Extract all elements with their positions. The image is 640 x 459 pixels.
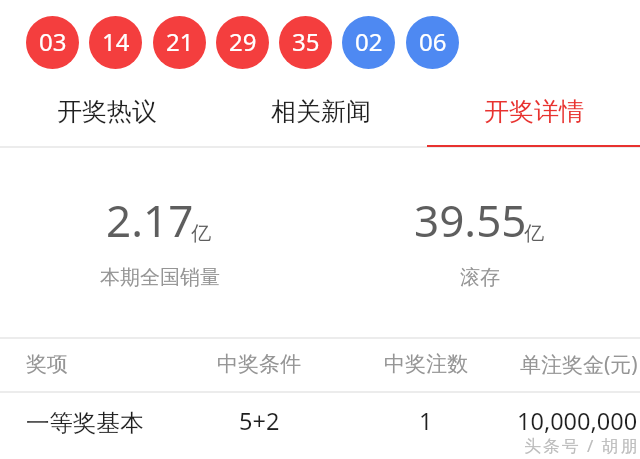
staticText: 14	[102, 25, 130, 58]
staticText: 中奖条件	[217, 351, 301, 377]
staticText: 03	[39, 25, 67, 58]
staticText: 一等奖基本	[26, 408, 144, 438]
staticText: 相关新闻	[271, 96, 371, 127]
staticText: 本期全国销量	[100, 265, 220, 290]
staticText: 29	[229, 25, 257, 58]
staticText: 亿	[191, 221, 211, 246]
staticText: 06	[419, 25, 447, 58]
staticText: 滚存	[460, 265, 500, 290]
staticText: 开奖热议	[57, 96, 157, 127]
button[interactable]: 一等奖基本	[0, 396, 640, 449]
staticText: 02	[355, 25, 383, 58]
staticText: 35	[292, 25, 320, 58]
staticText: 单注奖金(元)	[520, 350, 638, 379]
staticText: 2.17	[106, 190, 194, 250]
button[interactable]: 02	[342, 16, 395, 69]
staticText: 开奖详情	[484, 96, 584, 127]
staticText: 中奖注数	[384, 351, 468, 377]
staticText: 奖项	[26, 351, 68, 377]
staticText: 1	[419, 405, 433, 437]
button[interactable]: 21	[153, 16, 206, 69]
button[interactable]: 06	[406, 16, 459, 69]
staticText: 21	[166, 25, 194, 58]
button[interactable]: 14	[89, 16, 142, 69]
button[interactable]: 开奖详情	[427, 87, 640, 135]
staticText: 5+2	[239, 405, 280, 437]
staticText: 10,000,000	[517, 405, 638, 437]
staticText: 头条号 / 胡朋	[524, 434, 640, 457]
button[interactable]: 相关新闻	[214, 87, 427, 135]
button[interactable]: 29	[216, 16, 269, 69]
button[interactable]: 35	[279, 16, 332, 69]
button[interactable]: 03	[26, 16, 79, 69]
staticText: 亿	[524, 221, 544, 246]
staticText: 39.55	[414, 190, 527, 250]
button[interactable]: 开奖热议	[0, 87, 214, 135]
